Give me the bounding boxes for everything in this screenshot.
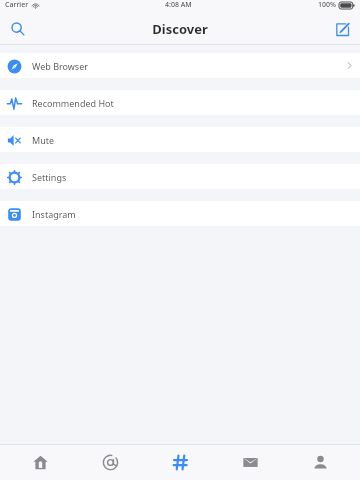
button[interactable]: Recommended Hot — [0, 90, 360, 115]
staticText: Carrier — [5, 0, 29, 10]
staticText: 100% — [318, 0, 336, 10]
button[interactable]: Instagram — [0, 201, 360, 226]
staticText: 4:08 AM — [165, 0, 192, 10]
button[interactable]: Home — [10, 445, 70, 480]
button[interactable]: Search — [4, 15, 32, 43]
button[interactable]: Discover — [150, 445, 210, 480]
staticText: Mute — [32, 134, 55, 146]
staticText: Discover — [152, 20, 208, 38]
button[interactable]: Web Browser — [0, 53, 360, 78]
button[interactable]: Settings — [0, 164, 360, 189]
button[interactable]: Mute — [0, 127, 360, 152]
staticText: Web Browser — [32, 60, 88, 72]
button[interactable]: Profile — [290, 445, 350, 480]
staticText: Settings — [32, 171, 67, 183]
button[interactable]: Compose — [328, 15, 356, 43]
staticText: Instagram — [32, 208, 76, 220]
button[interactable]: Messages — [220, 445, 280, 480]
button[interactable]: Mentions — [80, 445, 140, 480]
staticText: Recommended Hot — [32, 97, 114, 109]
